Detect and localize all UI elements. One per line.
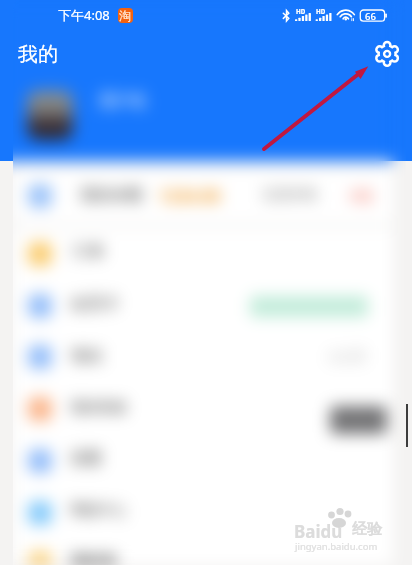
- staticText: HD: [296, 7, 306, 15]
- staticText: 我的: [18, 42, 58, 67]
- button[interactable]: Settings: [371, 38, 403, 70]
- staticText: 地址: [71, 346, 103, 366]
- staticText: 淘: [119, 8, 131, 23]
- staticText: 帮助中心: [70, 502, 126, 520]
- staticText: 我的余额: [80, 185, 142, 205]
- staticText: 下午4:08: [58, 6, 110, 24]
- staticText: 会员卡: [70, 294, 118, 314]
- staticText: 设置: [70, 449, 102, 469]
- staticText: 66: [365, 10, 376, 23]
- staticText: 我经常: [70, 553, 118, 565]
- staticText: HD: [316, 7, 326, 15]
- staticText: 优惠券数: [262, 186, 318, 204]
- staticText: 经验: [352, 520, 382, 539]
- staticText: 1234.00: [159, 184, 221, 206]
- staticText: 用户名: [99, 91, 147, 111]
- staticText: 8张: [350, 185, 374, 205]
- staticText: Baidu: [294, 520, 343, 543]
- staticText: 我的客服: [70, 399, 126, 417]
- staticText: 订单: [72, 242, 104, 262]
- button[interactable]: 我的: [10, 36, 66, 72]
- staticText: jingyan.baidu.com: [295, 540, 378, 553]
